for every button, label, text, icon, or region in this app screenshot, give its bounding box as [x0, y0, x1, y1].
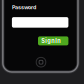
staticText: Sign In [41, 37, 60, 44]
staticText: Password [12, 4, 36, 10]
button[interactable]: Sign In [38, 36, 68, 45]
